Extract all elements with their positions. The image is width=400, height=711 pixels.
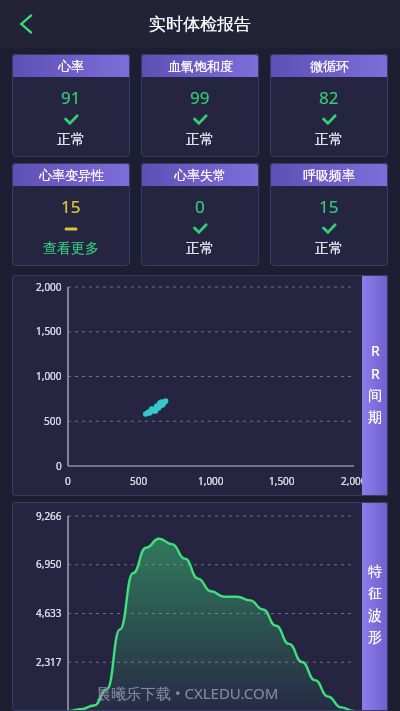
staticText: 征 bbox=[368, 585, 382, 603]
staticText: 9,266 bbox=[36, 509, 62, 523]
staticText: 1,000 bbox=[36, 369, 62, 383]
staticText: R bbox=[371, 341, 380, 360]
button[interactable]: Back bbox=[0, 0, 54, 48]
staticText: 心率 bbox=[58, 58, 84, 74]
staticText: 正常 bbox=[186, 131, 214, 149]
button[interactable]: 9,266 bbox=[12, 502, 388, 711]
staticText: 15 bbox=[61, 195, 81, 218]
staticText: 正常 bbox=[315, 240, 343, 258]
button[interactable]: 心率变异性 bbox=[12, 163, 130, 266]
staticText: 99 bbox=[190, 86, 210, 109]
staticText: 82 bbox=[319, 86, 339, 109]
staticText: 1,000 bbox=[198, 474, 224, 488]
staticText: 0 bbox=[65, 474, 71, 488]
staticText: 晨曦乐下载 • CXLEDU.COM bbox=[96, 683, 279, 703]
button[interactable]: 呼吸频率 bbox=[270, 163, 388, 266]
staticText: 查看更多 bbox=[43, 240, 99, 258]
staticText: 正常 bbox=[315, 131, 343, 149]
staticText: 0 bbox=[195, 195, 205, 218]
staticText: 91 bbox=[61, 86, 81, 109]
staticText: 1,500 bbox=[269, 474, 295, 488]
staticText: 500 bbox=[130, 474, 148, 488]
staticText: 2,000 bbox=[341, 474, 367, 488]
staticText: 波 bbox=[368, 607, 382, 625]
staticText: 血氧饱和度 bbox=[168, 58, 233, 74]
staticText: 500 bbox=[44, 414, 62, 428]
staticText: 2,317 bbox=[36, 655, 62, 669]
staticText: 4,633 bbox=[36, 606, 62, 620]
staticText: R bbox=[371, 364, 380, 383]
staticText: 呼吸频率 bbox=[303, 167, 355, 183]
staticText: 0 bbox=[56, 459, 62, 473]
button[interactable]: 心率 bbox=[12, 54, 130, 157]
staticText: 微循环 bbox=[310, 58, 349, 74]
staticText: 期 bbox=[368, 409, 382, 427]
staticText: 6,950 bbox=[36, 557, 62, 571]
button[interactable]: 心率失常 bbox=[141, 163, 259, 266]
button[interactable]: 微循环 bbox=[270, 54, 388, 157]
staticText: 特 bbox=[368, 563, 382, 581]
staticText: 正常 bbox=[57, 131, 85, 149]
staticText: 形 bbox=[368, 629, 382, 647]
staticText: 正常 bbox=[186, 240, 214, 258]
staticText: 心率变异性 bbox=[39, 167, 104, 183]
staticText: 1,500 bbox=[36, 324, 62, 338]
staticText: 15 bbox=[319, 195, 339, 218]
staticText: 2,000 bbox=[36, 280, 62, 294]
staticText: 实时体检报告 bbox=[149, 14, 251, 35]
staticText: 心率失常 bbox=[174, 167, 226, 183]
staticText: 间 bbox=[368, 387, 382, 405]
button[interactable]: 2,000 bbox=[12, 275, 388, 496]
button[interactable]: 血氧饱和度 bbox=[141, 54, 259, 157]
